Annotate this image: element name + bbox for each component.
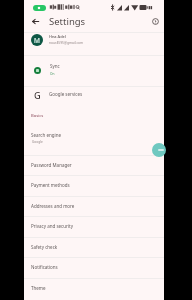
staticText: Password Manager bbox=[31, 162, 72, 168]
button[interactable]: Addresses and more bbox=[24, 196, 164, 217]
button[interactable]: Theme bbox=[24, 278, 164, 299]
button[interactable] bbox=[24, 87, 164, 105]
button[interactable] bbox=[24, 56, 164, 86]
button[interactable]: Quick action bbox=[152, 143, 166, 157]
button[interactable]: Safety check bbox=[24, 237, 164, 258]
staticText: Sync bbox=[50, 63, 60, 69]
staticText: Safety check bbox=[31, 244, 58, 250]
staticText: Google bbox=[32, 140, 43, 144]
staticText: Settings bbox=[49, 15, 86, 28]
staticText: Notifications bbox=[31, 264, 58, 270]
staticText: Google services bbox=[49, 91, 83, 97]
button[interactable]: Password Manager bbox=[24, 155, 164, 176]
staticText: nour4595@gmail.com bbox=[49, 40, 84, 44]
staticText: Privacy and security bbox=[31, 223, 73, 229]
button[interactable]: Notifications bbox=[24, 257, 164, 278]
staticText: Search engine bbox=[31, 132, 61, 138]
button[interactable] bbox=[24, 33, 164, 54]
button[interactable]: Privacy and security bbox=[24, 216, 164, 237]
staticText: Hna Adel bbox=[49, 34, 66, 39]
staticText: M bbox=[34, 36, 40, 45]
staticText: Addresses and more bbox=[31, 203, 75, 209]
button[interactable]: Payment methods bbox=[24, 175, 164, 196]
staticText: Payment methods bbox=[31, 182, 70, 188]
button[interactable]: Help bbox=[149, 15, 162, 28]
staticText: On bbox=[50, 72, 55, 76]
staticText: Theme bbox=[31, 285, 46, 291]
button[interactable] bbox=[24, 128, 164, 154]
staticText: G bbox=[34, 89, 41, 102]
staticText: Basics bbox=[31, 113, 44, 119]
button[interactable]: Back bbox=[28, 14, 43, 29]
